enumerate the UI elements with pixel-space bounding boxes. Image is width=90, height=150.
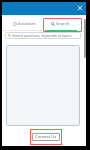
button[interactable]: Assistant bbox=[4, 16, 44, 31]
staticText: Assistant bbox=[18, 21, 36, 27]
button[interactable]: Contact Us bbox=[32, 133, 60, 141]
staticText: Search questions, keywords or topics bbox=[12, 33, 72, 38]
staticText: Contact Us bbox=[35, 134, 57, 140]
button[interactable]: Search bbox=[42, 16, 78, 31]
button[interactable]: Close bbox=[75, 3, 85, 13]
button[interactable]: Search questions, keywords or topics bbox=[5, 32, 81, 39]
staticText: Search bbox=[56, 21, 70, 27]
